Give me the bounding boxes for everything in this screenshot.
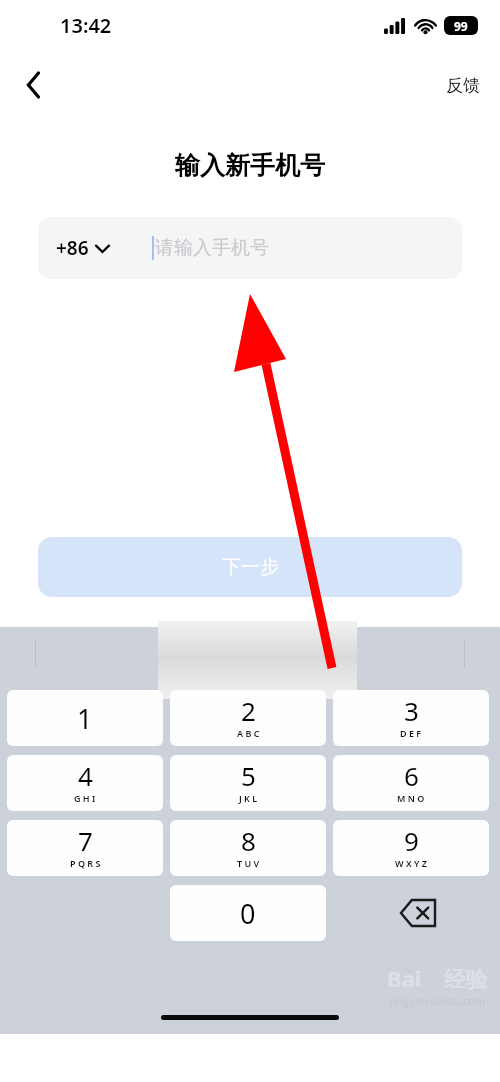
- staticText: jingyan.baidu.com: [390, 993, 486, 1008]
- button[interactable]: +86: [56, 235, 109, 261]
- staticText: P Q R S: [70, 857, 101, 869]
- staticText: D E F: [400, 727, 422, 739]
- staticText: T U V: [237, 857, 260, 869]
- staticText: J K L: [239, 792, 258, 804]
- staticText: 2: [241, 693, 256, 728]
- staticText: W X Y Z: [395, 857, 427, 869]
- button[interactable]: 5: [170, 755, 326, 811]
- button[interactable]: 8: [170, 820, 326, 876]
- staticText: 99: [454, 18, 468, 34]
- staticText: 8: [241, 823, 256, 858]
- staticText: 0: [240, 895, 256, 932]
- staticText: +86: [56, 235, 89, 261]
- button[interactable]: 0: [170, 885, 326, 941]
- staticText: A B C: [237, 727, 260, 739]
- button[interactable]: 1: [7, 690, 163, 746]
- button[interactable]: 下一步: [38, 537, 462, 597]
- staticText: 输入新手机号: [175, 150, 325, 181]
- button[interactable]: 6: [333, 755, 489, 811]
- staticText: 1: [77, 700, 93, 737]
- staticText: 7: [78, 823, 93, 858]
- button[interactable]: +86: [38, 217, 462, 279]
- staticText: G H I: [74, 792, 96, 804]
- button[interactable]: 2: [170, 690, 326, 746]
- button[interactable]: 3: [333, 690, 489, 746]
- button[interactable]: Delete: [340, 885, 495, 941]
- staticText: 反馈: [446, 75, 480, 96]
- staticText: 5: [241, 758, 256, 793]
- button[interactable]: Back: [12, 63, 56, 107]
- button[interactable]: 7: [7, 820, 163, 876]
- staticText: 9: [404, 823, 419, 858]
- staticText: 下一步: [222, 555, 279, 579]
- staticText: 6: [404, 758, 419, 793]
- staticText: 3: [404, 693, 419, 728]
- button[interactable]: 9: [333, 820, 489, 876]
- staticText: M N O: [397, 792, 425, 804]
- button[interactable]: 4: [7, 755, 163, 811]
- staticText: Bai 经验: [387, 963, 488, 993]
- staticText: 13:42: [60, 12, 112, 39]
- staticText: 4: [78, 758, 93, 793]
- button[interactable]: 反馈: [446, 75, 480, 96]
- staticText: 请输入手机号: [155, 236, 269, 260]
